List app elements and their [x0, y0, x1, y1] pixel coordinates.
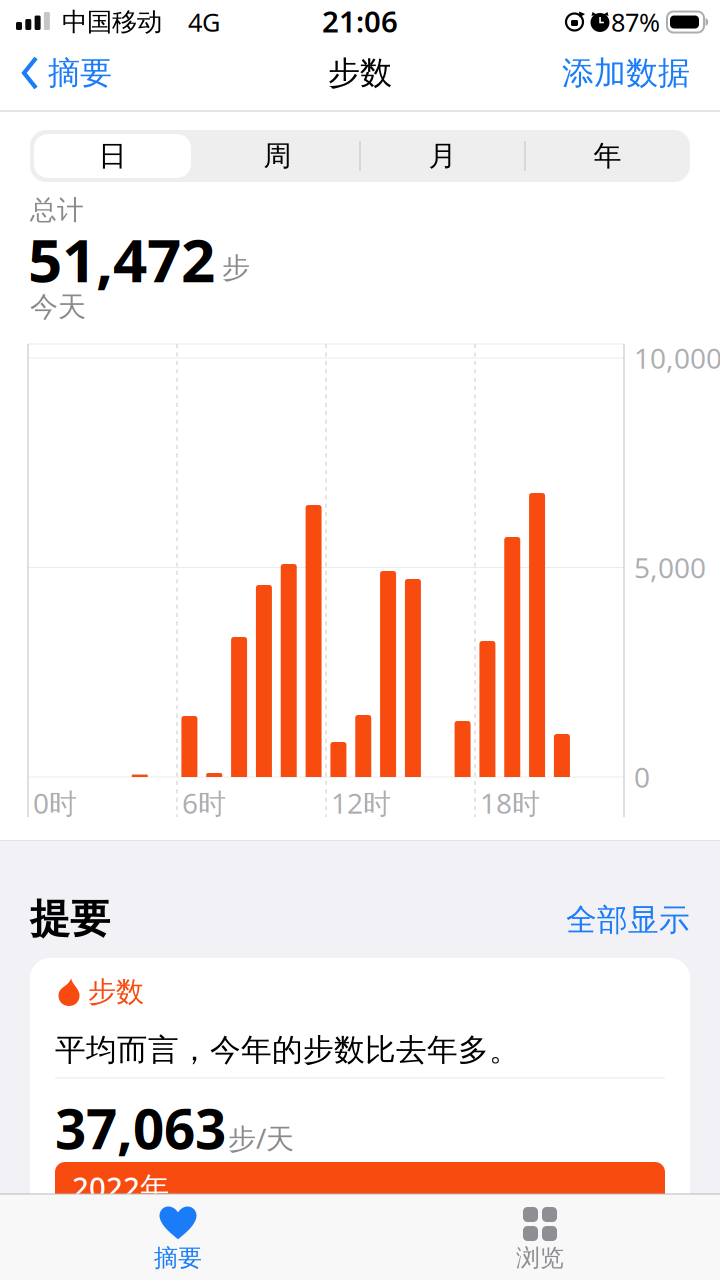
staticText: 平均而言，今年的步数比去年多。 [55, 1031, 520, 1069]
button[interactable]: 年 [527, 130, 687, 182]
staticText: 今天 [30, 290, 86, 324]
staticText: 提要 [30, 894, 110, 943]
staticText: 10,000 [634, 339, 720, 377]
staticText: 摘要 [48, 53, 112, 93]
staticText: 2022年 [72, 1167, 169, 1206]
staticText: 月 [428, 139, 456, 173]
staticText: 步数 [328, 53, 392, 93]
staticText: 总计 [30, 194, 84, 226]
staticText: 全部显示 [566, 901, 690, 939]
button[interactable]: 月 [362, 130, 522, 182]
button[interactable]: 摘要 [88, 1194, 268, 1280]
staticText: 步数 [88, 975, 144, 1009]
button[interactable]: 全部显示 [490, 895, 690, 945]
staticText: 步/天 [228, 1119, 294, 1157]
staticText: 摘要 [154, 1243, 202, 1273]
staticText: 年 [593, 139, 621, 173]
staticText: 37,063 [55, 1092, 226, 1164]
button[interactable]: 添加数据 [520, 43, 690, 103]
staticText: 步 [222, 251, 250, 285]
button[interactable] [30, 958, 690, 1258]
staticText: 6时 [182, 784, 226, 822]
staticText: 87% [611, 5, 660, 39]
staticText: 21:06 [322, 1, 398, 40]
button[interactable]: 周 [197, 130, 357, 182]
button[interactable]: 摘要 [20, 43, 170, 103]
staticText: 51,472 [28, 219, 215, 299]
staticText: 0 [634, 758, 650, 796]
staticText: 5,000 [634, 549, 706, 586]
staticText: 4G [188, 5, 220, 39]
staticText: 0时 [33, 784, 77, 822]
staticText: 浏览 [516, 1243, 564, 1273]
staticText: 18时 [480, 784, 540, 822]
staticText: 日 [98, 139, 126, 173]
button[interactable]: 日 [32, 130, 192, 182]
staticText: 12时 [331, 784, 391, 822]
staticText: 周 [263, 139, 291, 173]
staticText: 添加数据 [562, 53, 690, 93]
staticText: 中国移动 [62, 6, 162, 37]
button[interactable]: 浏览 [450, 1194, 630, 1280]
